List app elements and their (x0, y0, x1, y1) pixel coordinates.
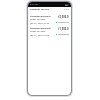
staticText: Jan 12, 2024 10:30 (30, 34, 49, 37)
button[interactable]: Pending Business (28, 13, 71, 25)
staticText: Pending Business (30, 14, 51, 17)
staticText: Order ID: 2345 (30, 30, 46, 33)
staticText: Payment History (30, 8, 50, 11)
staticText: Completed (58, 33, 69, 36)
staticText: 9:41 AM (30, 3, 38, 6)
staticText: ₹2,500.0 (58, 15, 69, 19)
staticText: ₹1,500.0 (58, 27, 69, 31)
button[interactable]: Close (64, 8, 69, 11)
staticText: Close (64, 8, 69, 11)
staticText: Jan 12, 2024 10:30 (30, 22, 49, 25)
staticText: Order ID: 2345 (30, 18, 46, 21)
staticText: Completed (58, 21, 69, 24)
button[interactable]: Pending Business (28, 25, 71, 37)
staticText: ▮▮▮ (65, 4, 69, 6)
staticText: Pending Business (30, 26, 51, 29)
